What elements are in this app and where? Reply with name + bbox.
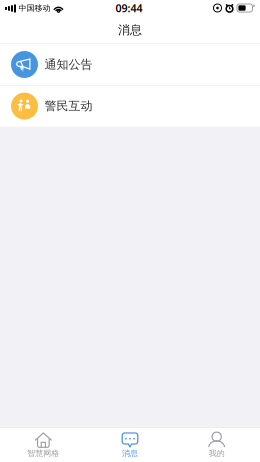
button[interactable]: 通知公告 <box>0 44 260 85</box>
staticText: 消息 <box>118 23 142 37</box>
staticText: 我的 <box>209 448 225 458</box>
staticText: 09:44 <box>115 1 142 15</box>
staticText: 通知公告 <box>44 57 92 72</box>
button[interactable]: 我的 <box>173 427 260 462</box>
staticText: 消息 <box>122 448 138 458</box>
staticText: 智慧网格 <box>27 448 59 458</box>
button[interactable]: 智慧网格 <box>0 427 87 462</box>
button[interactable]: 警民互动 <box>0 86 260 127</box>
button[interactable]: 消息 <box>87 427 173 462</box>
staticText: 警民互动 <box>44 99 92 113</box>
staticText: 中国移动 <box>18 3 50 13</box>
